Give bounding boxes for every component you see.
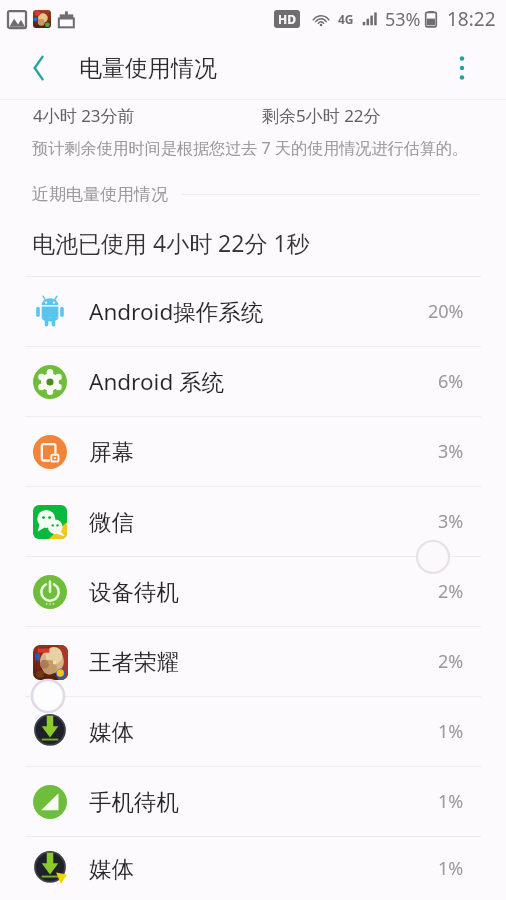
button[interactable]: 媒体 <box>0 837 506 900</box>
staticText: 4小时 23分前 <box>33 104 135 127</box>
staticText: 设备待机 <box>89 578 179 606</box>
staticText: 屏幕 <box>89 438 134 466</box>
button[interactable]: More options <box>440 46 484 90</box>
staticText: 电量使用情况 <box>79 54 217 83</box>
staticText: 剩余5小时 22分 <box>262 104 381 127</box>
staticText: 53% <box>385 7 421 32</box>
staticText: 手机待机 <box>89 788 179 816</box>
button[interactable]: Android操作系统 <box>0 277 506 346</box>
button[interactable]: Back <box>16 45 62 91</box>
staticText: 3% <box>438 509 464 534</box>
staticText: 2% <box>438 649 464 674</box>
staticText: Android 系统 <box>89 366 225 397</box>
staticText: 6% <box>438 369 464 394</box>
staticText: 媒体 <box>89 718 134 746</box>
staticText: 预计剩余使用时间是根据您过去 7 天的使用情况进行估算的。 <box>32 137 469 159</box>
staticText: 1% <box>438 719 464 744</box>
button[interactable]: Android 系统 <box>0 347 506 416</box>
staticText: 18:22 <box>447 6 496 32</box>
staticText: 20% <box>428 299 464 324</box>
staticText: 近期电量使用情况 <box>32 184 168 205</box>
button[interactable]: 媒体 <box>0 697 506 766</box>
button[interactable]: 王者荣耀 <box>0 627 506 696</box>
staticText: 3% <box>438 439 464 464</box>
staticText: 1% <box>438 856 464 881</box>
staticText: 电池已使用 4小时 22分 1秒 <box>32 227 310 258</box>
staticText: 王者荣耀 <box>89 648 179 676</box>
button[interactable]: 屏幕 <box>0 417 506 486</box>
staticText: 媒体 <box>89 855 134 883</box>
staticText: 4G <box>338 11 354 27</box>
button[interactable]: 设备待机 <box>0 557 506 626</box>
button[interactable]: 微信 <box>0 487 506 556</box>
staticText: 微信 <box>89 508 134 536</box>
staticText: Android操作系统 <box>89 296 264 327</box>
button[interactable]: 手机待机 <box>0 767 506 836</box>
staticText: 1% <box>438 789 464 814</box>
staticText: 2% <box>438 579 464 604</box>
staticText: HD <box>278 11 296 27</box>
